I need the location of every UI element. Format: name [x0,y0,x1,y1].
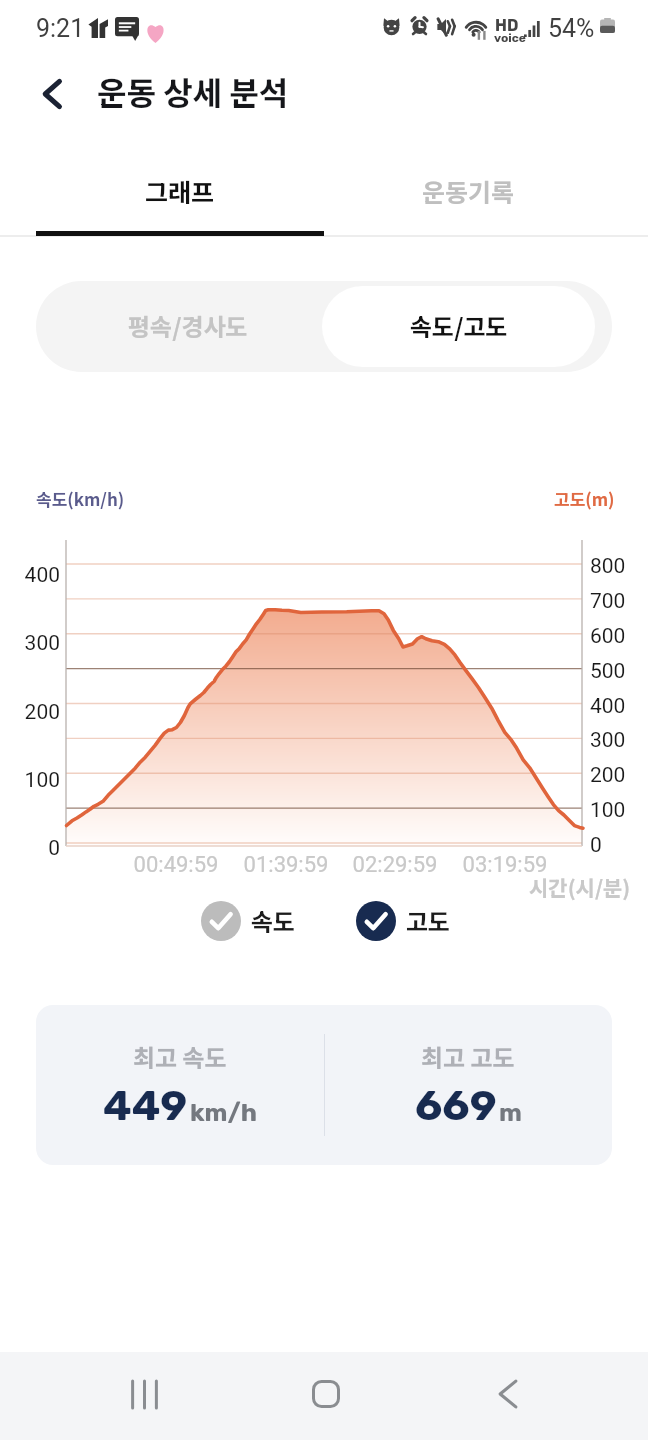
button[interactable]: Back [472,1358,544,1430]
staticText: 평속/경사도 [128,308,248,343]
staticText: 300 [590,728,626,753]
staticText: 속도 [251,903,296,938]
button[interactable]: 운동기록 [324,148,612,236]
staticText: 449 [103,1081,188,1131]
button[interactable]: Back [22,64,82,124]
staticText: 600 [590,624,626,649]
button[interactable]: 평속/경사도 [53,281,322,372]
staticText: 속도(km/h) [36,486,125,511]
staticText: 300 [2,631,60,656]
staticText: 0 [590,833,602,858]
staticText: 그래프 [145,173,215,209]
staticText: 0 [2,836,60,861]
staticText: km/h [190,1098,258,1128]
button[interactable]: Recent apps [108,1358,180,1430]
button[interactable]: 최고 속도 [36,1005,324,1165]
button[interactable]: 최고 고도 [324,1005,612,1165]
staticText: 운동 상세 분석 [97,68,289,114]
staticText: 시간(시/분) [529,872,631,902]
button[interactable]: 고도 [356,900,451,942]
staticText: 03:19:59 [445,852,565,878]
staticText: voice [494,31,526,45]
staticText: 01:39:59 [226,852,346,878]
staticText: 800 [590,554,626,579]
staticText: 운동기록 [422,173,515,209]
staticText: 9:21 [36,14,85,43]
staticText: 400 [590,694,626,719]
button[interactable]: 속도 [201,900,296,942]
staticText: 고도 [406,903,451,938]
staticText: 200 [590,763,626,788]
staticText: 100 [590,798,626,823]
staticText: 669 [415,1081,497,1131]
staticText: 500 [590,659,626,684]
staticText: 최고 고도 [421,1039,515,1074]
button[interactable]: 그래프 [36,148,324,236]
button[interactable]: Home [290,1358,362,1430]
staticText: 400 [2,563,60,588]
staticText: 100 [2,768,60,793]
staticText: 54% [548,14,595,43]
button[interactable]: 속도/고도 [322,286,595,367]
staticText: HD [495,16,519,35]
staticText: 200 [2,700,60,725]
staticText: 고도(m) [554,486,615,511]
staticText: 최고 속도 [133,1039,227,1074]
staticText: 700 [590,589,626,614]
staticText: 속도/고도 [410,308,508,343]
staticText: m [499,1098,522,1128]
staticText: 02:29:59 [335,852,455,878]
staticText: 00:49:59 [116,852,236,878]
